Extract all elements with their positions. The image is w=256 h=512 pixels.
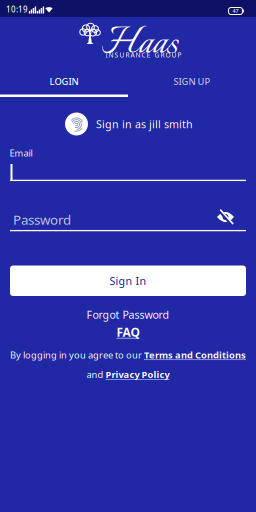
staticText: Password [13,211,71,228]
staticText: INSURANCE GROUP [105,51,181,59]
button[interactable]: and Privacy Policy [86,368,169,381]
button[interactable]: Email [10,160,246,181]
button[interactable]: Password [10,206,246,232]
staticText: 10:19 [6,4,28,15]
staticText: and Privacy Policy [86,368,169,381]
staticText: Sign in as jill smith [96,117,193,131]
staticText: LOGIN [49,75,78,88]
staticText: FAQ [116,324,139,340]
staticText: SIGN UP [173,75,210,88]
button[interactable]: Sign in as jill smith [65,112,193,135]
staticText: Email [9,147,32,159]
button[interactable]: Sign In [10,265,246,296]
button[interactable]: SIGN UP [128,66,256,96]
button[interactable]: Show password [214,208,236,226]
staticText: Forgot Password [86,307,169,322]
staticText: By logging in you agree to our Terms and… [10,349,246,361]
staticText: 47 [232,7,238,15]
button[interactable]: LOGIN [0,66,128,96]
button[interactable]: By logging in you agree to our Terms and… [10,349,246,361]
button[interactable]: Forgot Password [86,307,169,322]
staticText: Haas [102,14,178,74]
button[interactable]: FAQ [116,324,139,340]
staticText: Sign In [109,274,146,288]
